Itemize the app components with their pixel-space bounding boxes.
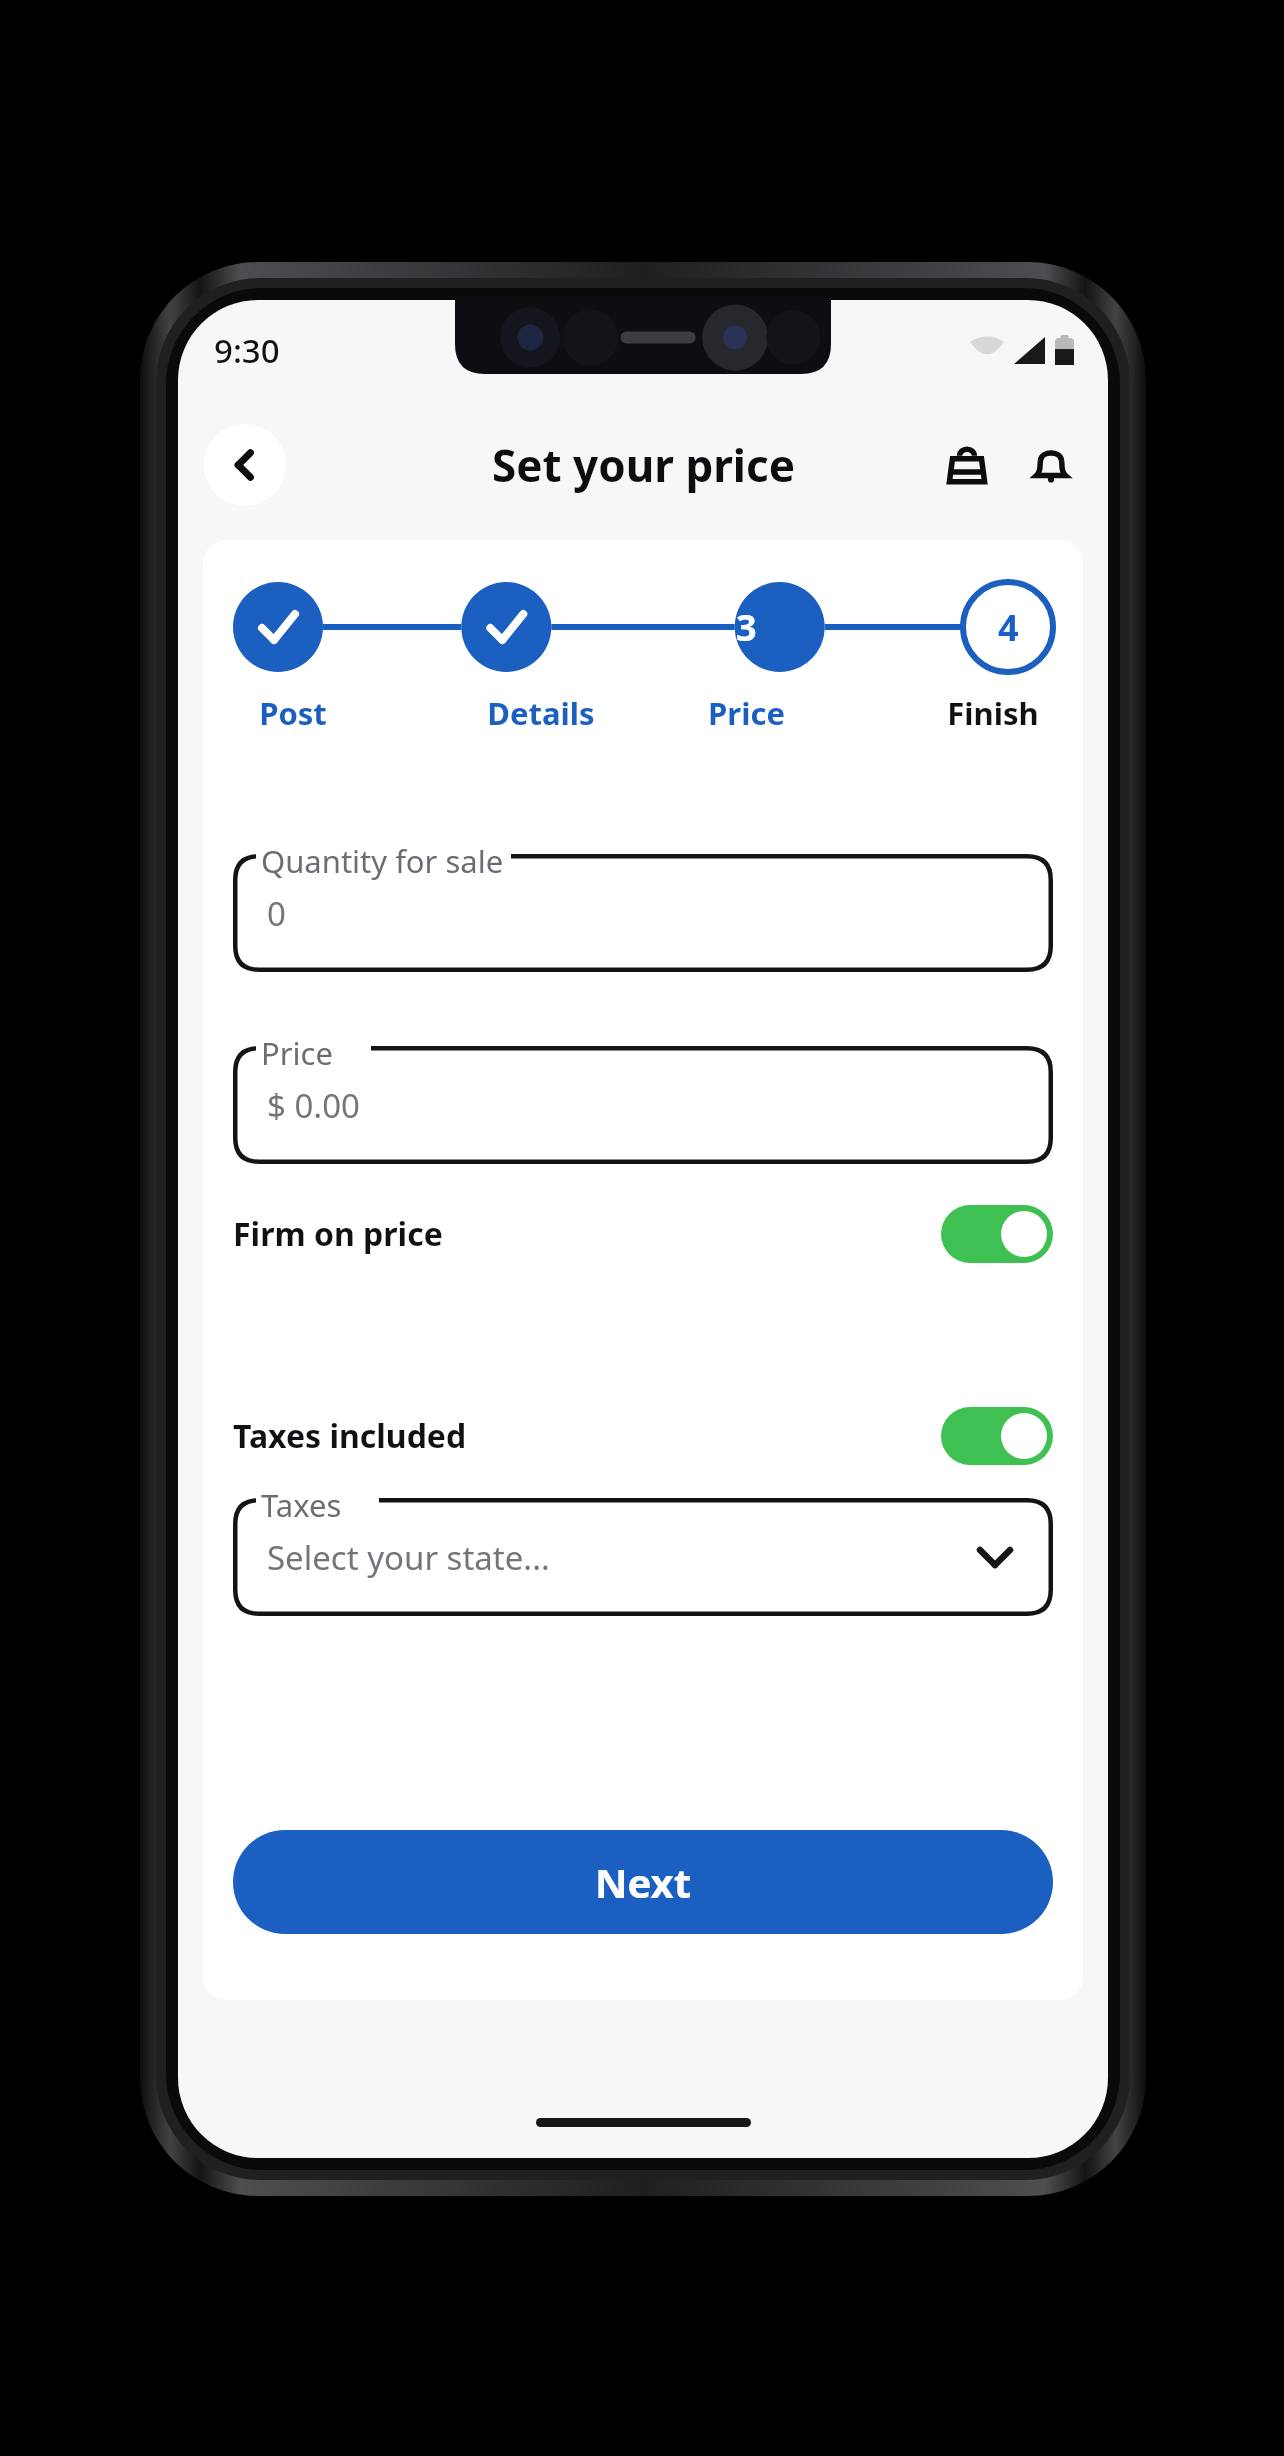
staticText: Taxes bbox=[261, 1484, 342, 1526]
button[interactable]: Taxes included bbox=[233, 1388, 1053, 1484]
button[interactable]: Next bbox=[233, 1830, 1053, 1934]
staticText: Finish bbox=[947, 692, 1039, 734]
button[interactable]: Firm on price bbox=[233, 1186, 1053, 1282]
button[interactable]: Bag bbox=[938, 436, 996, 494]
button[interactable]: Back bbox=[204, 424, 286, 506]
button[interactable]: Price bbox=[233, 1046, 1053, 1164]
staticText: Price bbox=[708, 692, 785, 734]
staticText: $ 0.00 bbox=[267, 1083, 360, 1128]
staticText: Price bbox=[261, 1032, 333, 1074]
staticText: Select your state... bbox=[267, 1535, 550, 1580]
staticText: Post bbox=[259, 692, 327, 734]
staticText: Quantity for sale bbox=[261, 840, 504, 882]
staticText: 0 bbox=[267, 891, 286, 936]
staticText: 4 bbox=[998, 603, 1019, 652]
staticText: 9:30 bbox=[214, 328, 280, 373]
staticText: Details bbox=[487, 692, 595, 734]
button[interactable]: Taxes bbox=[233, 1498, 1053, 1616]
staticText: Next bbox=[595, 1855, 692, 1909]
staticText: 3 bbox=[736, 603, 757, 652]
button[interactable]: Quantity for sale bbox=[233, 854, 1053, 972]
button[interactable]: Notifications bbox=[1022, 436, 1080, 494]
staticText: Taxes included bbox=[233, 1414, 467, 1458]
staticText: Firm on price bbox=[233, 1212, 443, 1256]
staticText: Set your price bbox=[492, 435, 795, 495]
